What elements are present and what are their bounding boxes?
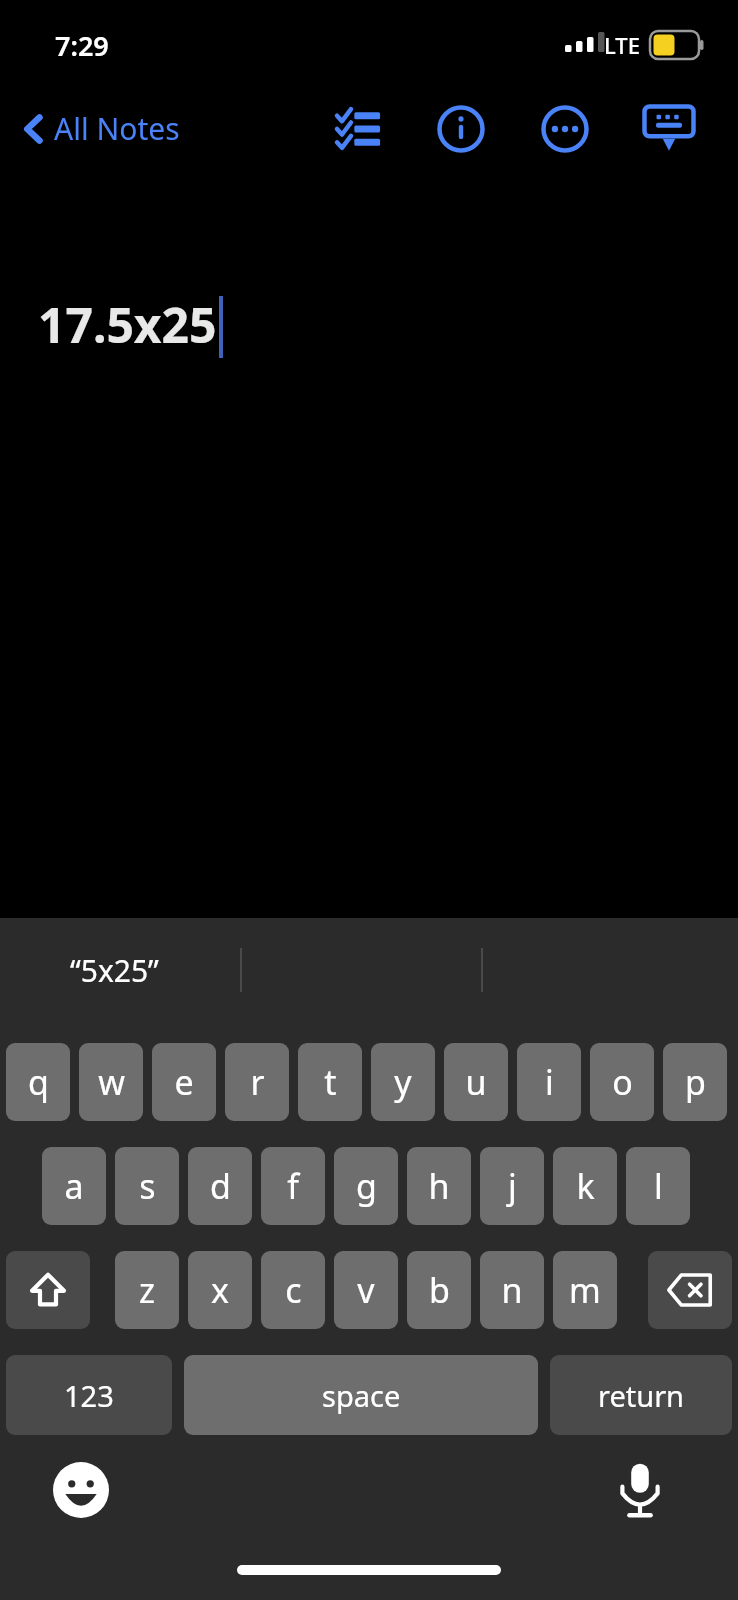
staticText: 123 [64,1376,114,1415]
button[interactable]: x [188,1251,252,1329]
button[interactable]: t [298,1043,362,1121]
staticText: s [139,1163,156,1209]
staticText: z [139,1267,155,1313]
staticText: y [394,1059,412,1105]
staticText: r [250,1059,265,1105]
button[interactable]: n [480,1251,544,1329]
staticText: e [174,1059,194,1105]
staticText: return [598,1376,685,1415]
staticText: l [654,1163,663,1209]
button[interactable]: f [261,1147,325,1225]
button[interactable]: 123 [6,1355,172,1435]
button[interactable]: b [407,1251,471,1329]
button[interactable]: Emoji [45,1454,117,1526]
button[interactable]: return [550,1355,732,1435]
staticText: 17.5x25 [38,292,217,357]
staticText: h [428,1163,450,1209]
staticText: g [356,1163,377,1209]
staticText: m [569,1267,601,1313]
staticText: w [98,1059,125,1105]
button[interactable]: o [590,1043,654,1121]
button[interactable]: y [371,1043,435,1121]
button[interactable]: m [553,1251,617,1329]
staticText: d [210,1163,231,1209]
button[interactable]: Hide keyboard [634,96,704,162]
staticText: i [545,1059,554,1105]
button[interactable]: i [517,1043,581,1121]
staticText: t [324,1059,337,1105]
button[interactable]: c [261,1251,325,1329]
button[interactable]: w [79,1043,143,1121]
button[interactable]: Info [426,96,496,162]
button[interactable]: j [480,1147,544,1225]
staticText: x [211,1267,229,1313]
button[interactable]: Tag... [38,908,110,947]
button[interactable]: h [407,1147,471,1225]
staticText: LTE [604,30,640,60]
staticText: o [612,1059,633,1105]
button[interactable]: g [334,1147,398,1225]
button[interactable]: s [115,1147,179,1225]
staticText: q [28,1059,49,1105]
staticText: p [685,1059,706,1105]
staticText: k [576,1163,595,1209]
button[interactable]: v [334,1251,398,1329]
staticText: All Notes [54,108,180,149]
button[interactable]: l [626,1147,690,1225]
staticText: j [508,1163,517,1209]
staticText: a [64,1163,84,1209]
button[interactable]: More [530,96,600,162]
button[interactable]: space [184,1355,538,1435]
staticText: u [465,1059,487,1105]
button[interactable]: r [225,1043,289,1121]
button[interactable]: Backspace [648,1251,732,1329]
button[interactable]: “5x25” [70,950,159,991]
button[interactable]: q [6,1043,70,1121]
button[interactable]: d [188,1147,252,1225]
button[interactable]: p [663,1043,727,1121]
button[interactable]: Checklist [322,96,394,162]
button[interactable]: e [152,1043,216,1121]
button[interactable]: All Notes [12,102,188,155]
button[interactable]: Dictate [604,1454,676,1526]
button[interactable]: u [444,1043,508,1121]
staticText: c [285,1267,302,1313]
button[interactable]: Shift [6,1251,90,1329]
staticText: f [287,1163,299,1209]
button[interactable]: a [42,1147,106,1225]
button[interactable]: k [553,1147,617,1225]
staticText: n [501,1267,523,1313]
staticText: b [429,1267,450,1313]
button[interactable]: z [115,1251,179,1329]
staticText: space [322,1376,401,1415]
staticText: v [357,1267,375,1313]
staticText: 7:29 [55,27,109,64]
